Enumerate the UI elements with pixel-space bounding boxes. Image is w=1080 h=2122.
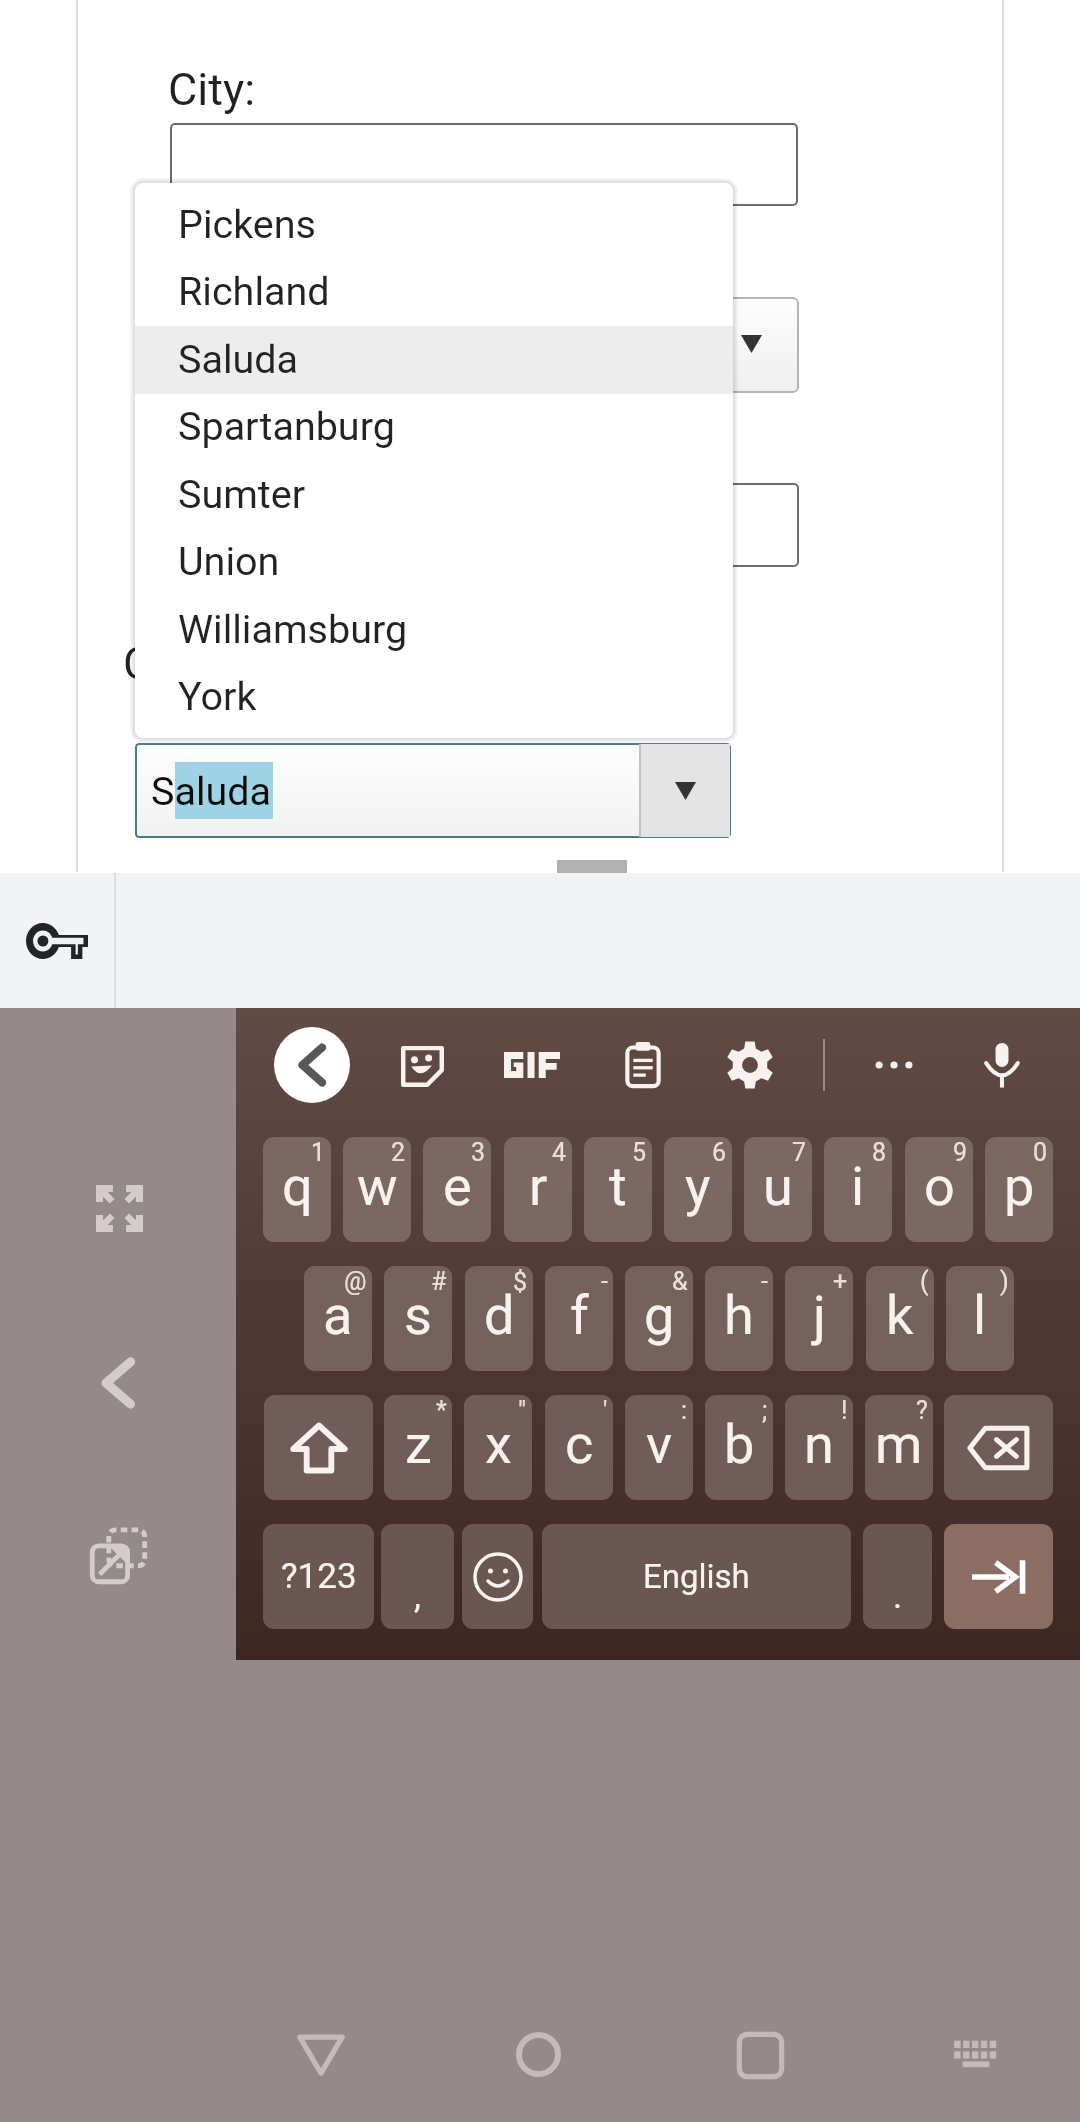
staticText: e [443, 1155, 472, 1218]
staticText: ! [841, 1396, 848, 1425]
button[interactable]: Recents [737, 2032, 784, 2079]
button[interactable]: Saluda [135, 326, 733, 394]
button[interactable]: Emoji [462, 1524, 533, 1629]
button[interactable]: Shift [264, 1395, 373, 1500]
button[interactable]: York [135, 663, 733, 731]
button[interactable]: 9 [905, 1137, 973, 1242]
button[interactable]: ' [545, 1395, 613, 1500]
button[interactable]: + [785, 1266, 853, 1371]
button[interactable]: Symbols [263, 1524, 374, 1629]
staticText: a [323, 1284, 353, 1347]
button[interactable]: : [625, 1395, 693, 1500]
staticText: ; [762, 1396, 768, 1425]
button[interactable]: & [625, 1266, 693, 1371]
button[interactable]: Home [516, 2032, 561, 2077]
button[interactable]: Stickers [384, 1027, 460, 1103]
button[interactable]: Spartanburg [135, 393, 733, 461]
staticText: k [886, 1284, 914, 1347]
button[interactable]: 1 [263, 1137, 331, 1242]
button[interactable]: Comma [381, 1524, 454, 1629]
staticText: n [804, 1413, 834, 1476]
button[interactable]: Sumter [135, 461, 733, 529]
button[interactable]: ( [866, 1266, 934, 1371]
staticText: 8 [872, 1138, 887, 1167]
button[interactable] [170, 123, 798, 206]
button[interactable]: ; [705, 1395, 773, 1500]
button[interactable]: Switch keyboard [952, 2039, 1000, 2067]
staticText: - [601, 1267, 608, 1296]
staticText: Saluda [178, 336, 299, 382]
staticText: y [685, 1155, 711, 1218]
staticText: 1 [311, 1138, 326, 1167]
staticText: ' [603, 1396, 608, 1425]
button[interactable]: GIF [494, 1027, 570, 1103]
button[interactable]: Autofill password [8, 893, 106, 989]
button[interactable]: Backspace [944, 1395, 1053, 1500]
button[interactable]: @ [304, 1266, 372, 1371]
staticText: Pickens [178, 201, 316, 247]
button[interactable]: Union [135, 528, 733, 596]
staticText: ) [1000, 1267, 1009, 1296]
staticText: 3 [471, 1138, 486, 1167]
button[interactable]: 7 [744, 1137, 812, 1242]
button[interactable]: 3 [423, 1137, 491, 1242]
staticText: l [973, 1284, 987, 1347]
staticText: 6 [712, 1138, 727, 1167]
staticText: ? [916, 1396, 928, 1425]
button[interactable]: $ [465, 1266, 533, 1371]
staticText: & [672, 1267, 688, 1296]
staticText: # [431, 1267, 447, 1296]
staticText: City: [168, 63, 256, 116]
staticText: Saluda [151, 768, 272, 814]
staticText: z [405, 1413, 432, 1476]
staticText: York [178, 673, 257, 719]
button[interactable]: Space [542, 1524, 851, 1629]
button[interactable]: 5 [584, 1137, 652, 1242]
button[interactable]: " [464, 1395, 532, 1500]
button[interactable]: 0 [985, 1137, 1053, 1242]
button[interactable]: - [705, 1266, 773, 1371]
button[interactable]: Resize keyboard [71, 1160, 167, 1256]
staticText: - [761, 1267, 768, 1296]
button[interactable] [660, 297, 799, 393]
staticText: Williamsburg [178, 606, 408, 652]
button[interactable]: ) [946, 1266, 1014, 1371]
button[interactable]: Enter [944, 1524, 1053, 1629]
staticText: v [646, 1413, 673, 1476]
button[interactable]: 6 [664, 1137, 732, 1242]
staticText: u [763, 1155, 793, 1218]
button[interactable]: ! [785, 1395, 853, 1500]
button[interactable]: Period [863, 1524, 932, 1629]
button[interactable]: ? [865, 1395, 933, 1500]
button[interactable]: Richland [135, 258, 733, 326]
button[interactable]: Pickens [135, 191, 733, 259]
staticText: s [404, 1284, 432, 1347]
staticText: Richland [178, 268, 330, 314]
button[interactable] [135, 743, 731, 838]
staticText: @ [344, 1267, 367, 1296]
button[interactable]: 2 [343, 1137, 411, 1242]
button[interactable]: Williamsburg [135, 596, 733, 664]
button[interactable]: Back [298, 2031, 344, 2075]
staticText: t [609, 1155, 627, 1218]
button[interactable] [660, 483, 799, 567]
button[interactable]: Clipboard [605, 1027, 681, 1103]
staticText: English [643, 1557, 750, 1596]
button[interactable]: # [384, 1266, 452, 1371]
button[interactable]: * [384, 1395, 452, 1500]
staticText: 7 [792, 1138, 807, 1167]
button[interactable]: Settings [712, 1027, 788, 1103]
button[interactable]: More options [856, 1027, 932, 1103]
button[interactable]: 4 [504, 1137, 572, 1242]
button[interactable]: Close toolbar [274, 1027, 350, 1103]
button[interactable]: Expand keyboard [70, 1507, 166, 1603]
button[interactable]: Collapse keyboard [70, 1335, 166, 1431]
staticText: * [436, 1396, 447, 1425]
staticText: d [484, 1284, 515, 1347]
button[interactable]: 8 [824, 1137, 892, 1242]
staticText: f [570, 1284, 589, 1347]
staticText: . [893, 1576, 903, 1617]
button[interactable]: - [545, 1266, 613, 1371]
staticText: C [123, 637, 153, 690]
button[interactable]: Voice input [964, 1027, 1040, 1103]
